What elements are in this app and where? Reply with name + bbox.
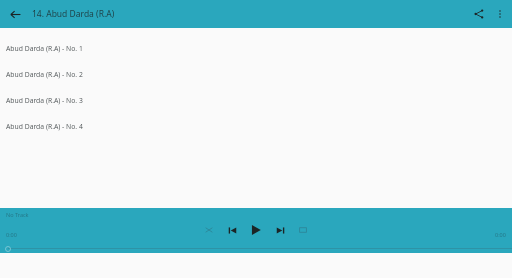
button[interactable]: Back [5, 4, 25, 24]
button[interactable]: More options [490, 4, 510, 24]
button[interactable]: Abud Darda (R.A) - No. 4 [0, 113, 512, 139]
staticText: 0:00 [495, 231, 506, 238]
staticText: Abud Darda (R.A) - No. 4 [6, 122, 83, 131]
staticText: 0:00 [6, 231, 17, 238]
button[interactable]: Play [245, 219, 267, 241]
button[interactable]: Abud Darda (R.A) - No. 1 [0, 35, 512, 61]
button[interactable]: Shuffle [199, 220, 219, 240]
button[interactable]: Abud Darda (R.A) - No. 3 [0, 87, 512, 113]
staticText: Abud Darda (R.A) - No. 1 [6, 44, 83, 53]
button[interactable]: Seek bar [0, 244, 512, 253]
staticText: Abud Darda (R.A) - No. 2 [6, 70, 83, 79]
staticText: 14. Abud Darda (R.A) [32, 8, 115, 20]
button[interactable]: Next [270, 220, 290, 240]
button[interactable]: Abud Darda (R.A) - No. 2 [0, 61, 512, 87]
button[interactable]: Share [468, 3, 490, 25]
staticText: Abud Darda (R.A) - No. 3 [6, 96, 83, 105]
button[interactable]: Repeat [293, 220, 313, 240]
button[interactable]: Previous [222, 220, 242, 240]
staticText: No Track [6, 211, 29, 218]
